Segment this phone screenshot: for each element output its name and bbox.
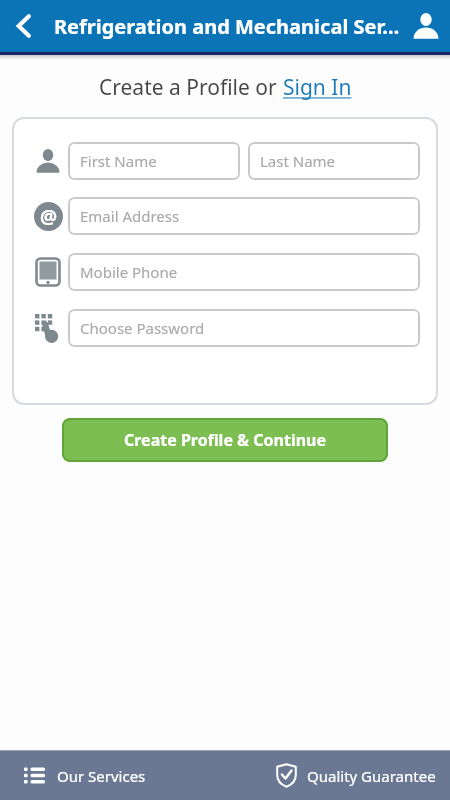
staticText: Sign In [283,73,352,102]
staticText: Create a Profile or [99,73,283,102]
staticText: Create Profile & Continue [124,429,327,451]
button[interactable]: First Name [68,142,240,180]
staticText: Refrigeration and Mechanical Ser… [54,13,402,40]
button[interactable]: Email Address [68,197,420,235]
staticText: Email Address [80,206,180,226]
staticText: Quality Guarantee [307,766,436,786]
staticText: Last Name [260,151,336,171]
button[interactable]: Mobile Phone [68,253,420,291]
staticText: First Name [80,151,157,171]
button[interactable]: Last Name [248,142,420,180]
button[interactable]: Our Services [0,751,162,800]
button[interactable] [402,2,450,50]
staticText: Our Services [57,766,146,786]
staticText: Choose Password [80,318,205,338]
button[interactable]: Quality Guarantee [260,751,450,800]
staticText: @ [40,204,58,230]
button[interactable]: Create Profile & Continue [62,418,388,462]
button[interactable]: Sign In [283,73,352,102]
button[interactable] [0,2,48,50]
staticText: Mobile Phone [80,262,178,282]
button[interactable]: Choose Password [68,309,420,347]
